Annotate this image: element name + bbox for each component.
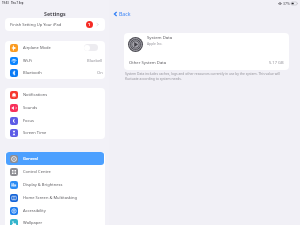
staticText: Bluebell <box>87 58 103 64</box>
button[interactable]: Sounds <box>6 101 104 114</box>
staticText: Finish Setting Up Your iPad <box>10 22 62 28</box>
staticText: Notifications <box>23 92 48 98</box>
button[interactable]: Screen Time <box>6 127 104 139</box>
button[interactable]: Airplane Mode <box>6 41 104 54</box>
staticText: Wi-Fi <box>23 58 33 64</box>
staticText: Display & Brightness <box>23 182 63 188</box>
button[interactable]: Finish Setting Up Your iPad <box>5 18 105 31</box>
staticText: Apple Inc. <box>147 41 163 45</box>
staticText: Bluetooth <box>23 70 42 76</box>
button[interactable]: Bluetooth <box>6 67 104 79</box>
button[interactable]: System Data <box>128 33 285 55</box>
staticText: Back <box>119 10 131 17</box>
staticText: Airplane Mode <box>23 45 51 51</box>
staticText: 5.17 GB <box>269 60 284 65</box>
button[interactable]: Airplane Mode toggle <box>84 44 98 51</box>
staticText: 37% <box>283 1 290 6</box>
staticText: 19:53 <box>2 1 9 5</box>
staticText: On <box>97 70 103 76</box>
button[interactable]: Wi-Fi <box>6 54 104 67</box>
staticText: General <box>23 156 38 162</box>
staticText: Settings <box>44 10 66 17</box>
button[interactable]: Control Centre <box>6 165 104 178</box>
button[interactable]: Home Screen & Multitasking <box>6 191 104 204</box>
staticText: Thu 7 Sep <box>11 1 24 5</box>
staticText: Other System Data <box>129 60 167 66</box>
staticText: 1 <box>88 22 91 27</box>
staticText: Focus <box>23 118 34 124</box>
button[interactable]: Wallpaper <box>6 217 104 225</box>
staticText: Control Centre <box>23 169 51 175</box>
button[interactable]: Notifications <box>6 88 104 101</box>
staticText: Wallpaper <box>23 220 43 225</box>
button[interactable]: Focus <box>6 114 104 127</box>
button[interactable]: Back <box>114 10 131 17</box>
button[interactable]: General <box>6 152 104 165</box>
staticText: System Data <box>147 34 173 40</box>
button[interactable]: Display & Brightness <box>6 178 104 191</box>
staticText: Home Screen & Multitasking <box>23 195 78 201</box>
staticText: Sounds <box>23 105 38 111</box>
staticText: System Data includes caches, logs and ot… <box>125 71 281 81</box>
staticText: Accessibility <box>23 208 46 214</box>
button[interactable]: Accessibility <box>6 204 104 217</box>
button[interactable]: Other System Data <box>129 55 284 70</box>
staticText: Screen Time <box>23 130 47 136</box>
